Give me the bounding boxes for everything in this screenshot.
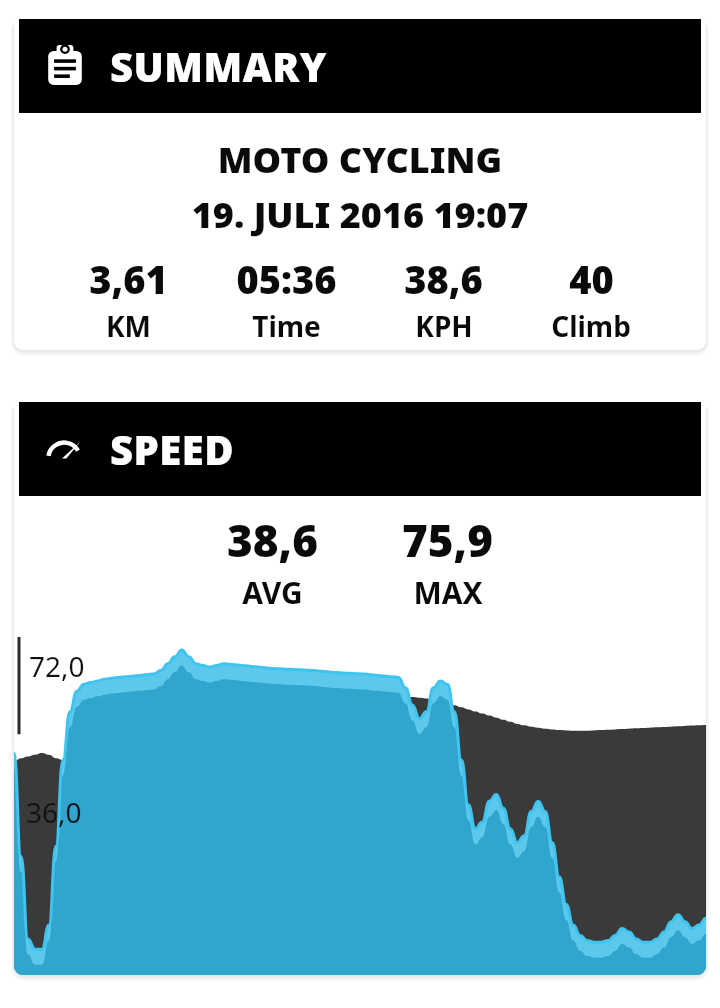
staticText: MAX (413, 572, 483, 613)
staticText: 05:36 (236, 253, 337, 305)
staticText: 3,61 (89, 253, 168, 305)
staticText: 75,9 (402, 510, 493, 570)
staticText: KPH (415, 307, 473, 345)
staticText: AVG (242, 572, 303, 613)
staticText: Time (252, 307, 321, 345)
staticText: MOTO CYCLING (14, 135, 706, 184)
staticText: 36,0 (26, 793, 82, 831)
other: Speed (45, 429, 85, 469)
button[interactable]: Speed (19, 402, 701, 496)
staticText: 38,6 (227, 510, 318, 570)
staticText: SPEED (110, 422, 235, 476)
button[interactable]: Summary (19, 19, 701, 113)
staticText: Climb (551, 307, 631, 345)
staticText: KM (106, 307, 151, 345)
staticText: 38,6 (404, 253, 483, 305)
staticText: 19. JULI 2016 19:07 (14, 190, 706, 239)
staticText: 40 (569, 253, 614, 305)
staticText: 72,0 (29, 647, 85, 685)
other: Summary (44, 45, 86, 87)
staticText: SUMMARY (110, 39, 327, 93)
